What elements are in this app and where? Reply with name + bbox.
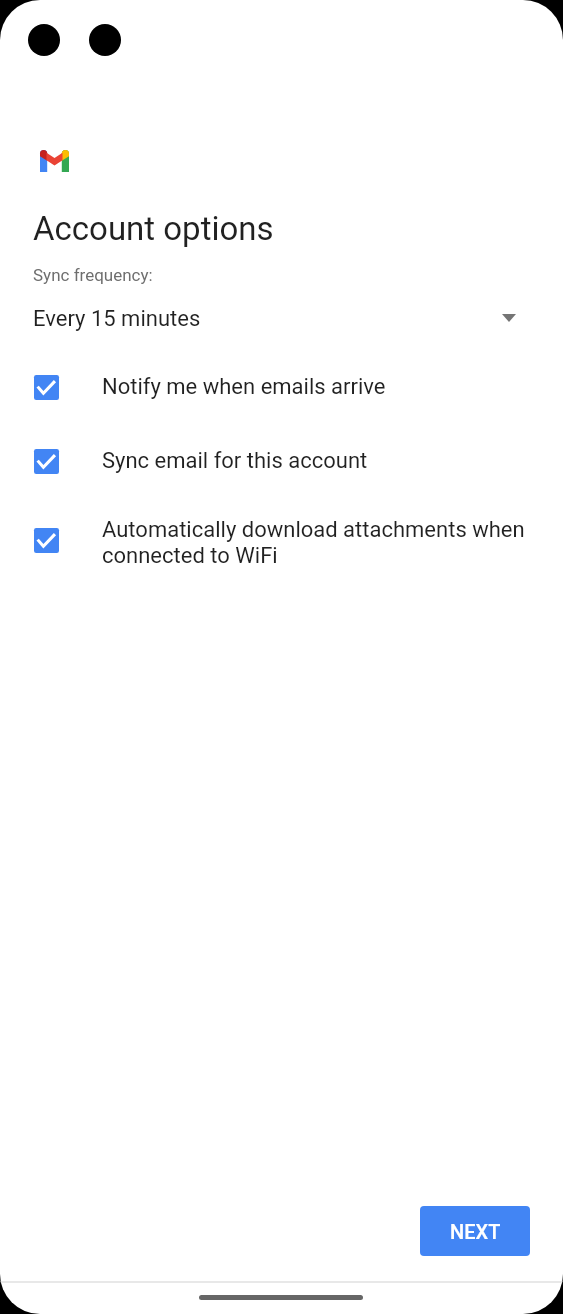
staticText: Sync email for this account	[102, 448, 368, 474]
other: Gmail	[40, 150, 69, 172]
staticText: Notify me when emails arrive	[102, 374, 386, 400]
staticText: Account options	[33, 209, 274, 248]
staticText: Automatically download attachments when …	[102, 517, 531, 568]
staticText: Sync frequency:	[33, 265, 153, 285]
other: Home	[199, 1295, 363, 1300]
button[interactable]: NEXT	[420, 1206, 530, 1256]
button[interactable]: Sync email for this account	[0, 435, 563, 487]
button[interactable]: Every 15 minutes	[0, 298, 563, 336]
other: Open sync frequency list	[502, 314, 516, 322]
staticText: Every 15 minutes	[33, 306, 201, 332]
staticText: NEXT	[450, 1220, 501, 1243]
button[interactable]: Automatically download attachments when …	[0, 516, 563, 568]
button[interactable]: Notify me when emails arrive	[0, 361, 563, 413]
